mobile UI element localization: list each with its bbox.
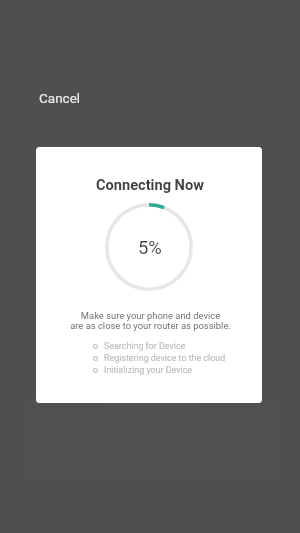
staticText: Registering device to the cloud — [104, 353, 226, 363]
other: step bullet — [93, 356, 98, 361]
other: step bullet — [93, 368, 98, 373]
button[interactable]: Cancel — [28, 83, 92, 113]
staticText: Cancel — [39, 90, 81, 106]
staticText: Searching for Device — [104, 341, 186, 351]
other: step bullet — [93, 344, 98, 349]
staticText: 5% — [138, 237, 162, 259]
staticText: Connecting Now — [96, 176, 204, 193]
staticText: Initializing your Device — [104, 365, 193, 375]
staticText: Make sure your phone and device are as c… — [70, 310, 231, 331]
